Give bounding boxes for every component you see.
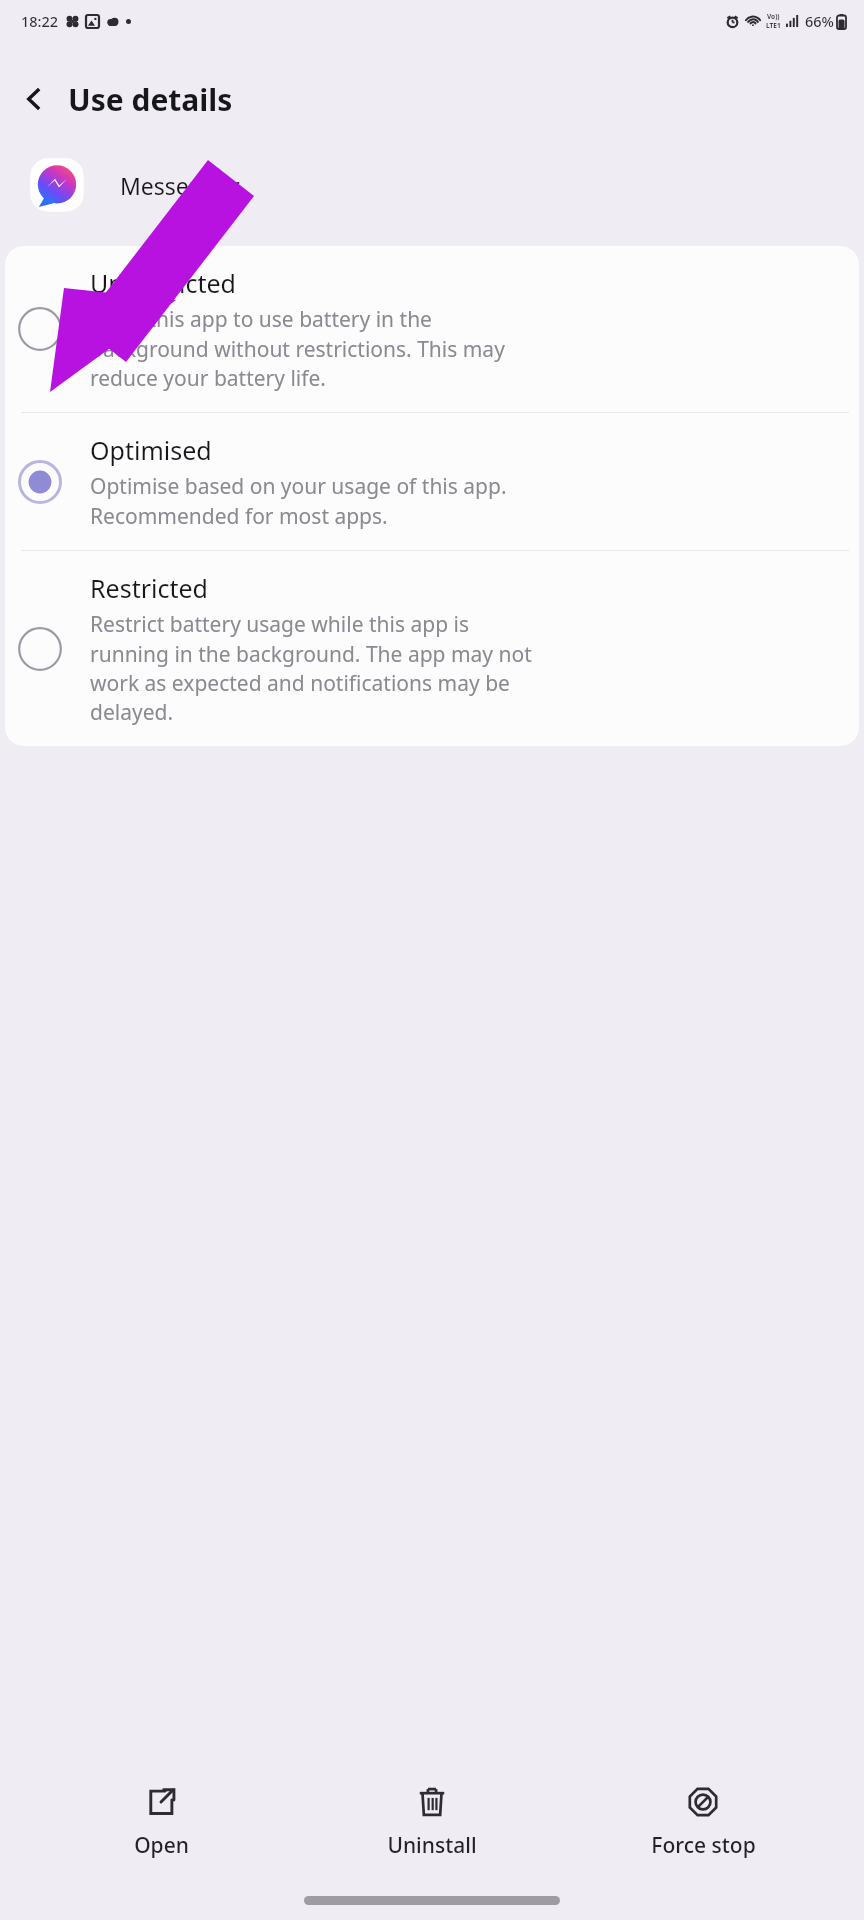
button[interactable]: Back xyxy=(10,75,58,123)
staticText: Unrestricted xyxy=(90,266,236,300)
staticText: Uninstall xyxy=(387,1831,477,1860)
button[interactable]: Unrestricted xyxy=(5,246,859,412)
staticText: Allow this app to use battery in the bac… xyxy=(90,305,505,392)
staticText: Restrict battery usage while this app is… xyxy=(90,610,532,726)
button[interactable]: Open xyxy=(51,1779,271,1866)
staticText: Optimised xyxy=(90,433,212,467)
staticText: 18:22 xyxy=(21,11,59,31)
staticText: Open xyxy=(134,1831,189,1860)
staticText: LTE1 xyxy=(766,21,781,30)
staticText: Restricted xyxy=(90,571,208,605)
staticText: Use details xyxy=(68,79,233,120)
button[interactable]: Optimised xyxy=(5,413,859,550)
staticText: Vo)) xyxy=(767,12,780,21)
button[interactable]: Restricted xyxy=(5,551,859,746)
staticText: 66% xyxy=(805,11,834,31)
staticText: Messenger xyxy=(120,170,240,201)
button[interactable]: Uninstall xyxy=(322,1779,542,1866)
staticText: Optimise based on your usage of this app… xyxy=(90,472,507,530)
button[interactable]: Messenger xyxy=(0,150,864,220)
button[interactable]: Force stop xyxy=(593,1779,813,1866)
staticText: Force stop xyxy=(651,1831,756,1860)
